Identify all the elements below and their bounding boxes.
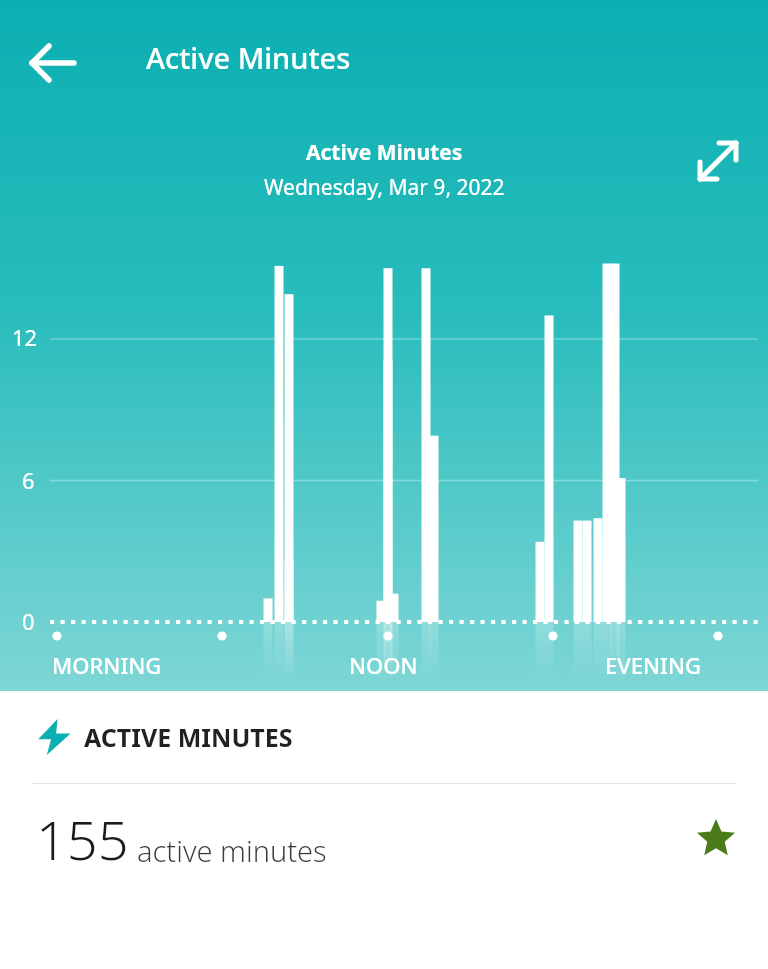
staticText: 6 bbox=[22, 465, 35, 495]
button[interactable]: Expand chart bbox=[688, 131, 748, 191]
staticText: 12 bbox=[12, 322, 38, 352]
staticText: MORNING bbox=[52, 650, 162, 680]
staticText: 0 bbox=[22, 606, 35, 636]
staticText: 155 bbox=[36, 802, 129, 876]
staticText: active minutes bbox=[137, 831, 327, 870]
staticText: EVENING bbox=[605, 650, 701, 680]
button[interactable]: Back bbox=[24, 33, 84, 93]
button[interactable]: ACTIVE MINUTES bbox=[0, 691, 768, 783]
staticText: ACTIVE MINUTES bbox=[84, 720, 293, 754]
other: Goal achieved bbox=[696, 819, 736, 859]
staticText: Active Minutes bbox=[306, 138, 463, 167]
staticText: Active Minutes bbox=[146, 38, 351, 77]
staticText: Wednesday, Mar 9, 2022 bbox=[264, 173, 505, 202]
staticText: NOON bbox=[349, 650, 418, 680]
button[interactable]: 155 bbox=[0, 784, 768, 894]
